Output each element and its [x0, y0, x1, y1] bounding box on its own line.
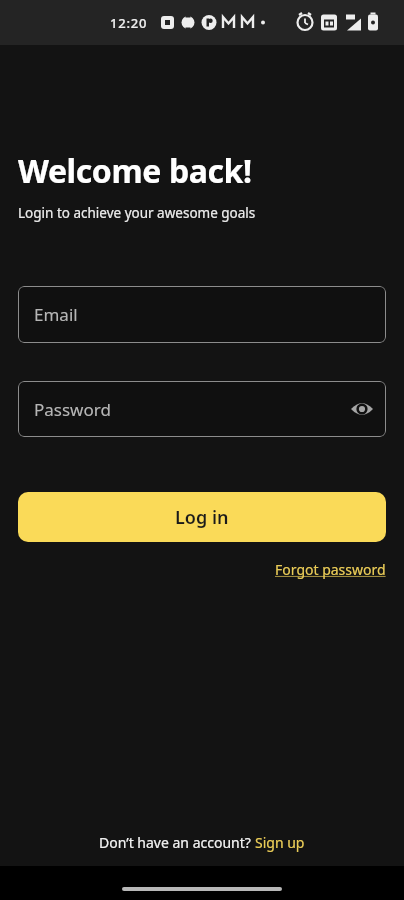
button[interactable]: Password — [18, 381, 386, 437]
staticText: Don’t have an account? — [99, 833, 255, 852]
button[interactable] — [344, 391, 380, 427]
button[interactable]: Email — [18, 286, 386, 343]
staticText: Log in — [175, 505, 229, 530]
staticText: Password — [34, 398, 111, 421]
button[interactable]: Forgot password — [275, 560, 386, 579]
button[interactable]: Sign up — [255, 833, 305, 852]
staticText: 12:20 — [110, 14, 148, 32]
staticText: Login to achieve your awesome goals — [18, 204, 256, 222]
staticText: Email — [34, 303, 78, 326]
staticText: Welcome back! — [18, 149, 252, 193]
button[interactable]: Log in — [18, 492, 386, 542]
